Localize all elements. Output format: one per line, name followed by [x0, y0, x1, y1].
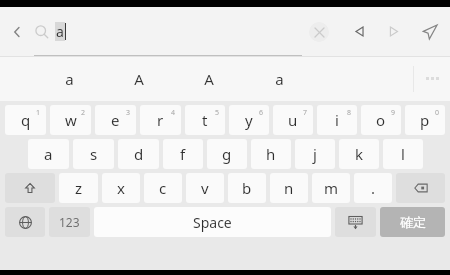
button[interactable]: Back	[0, 7, 34, 56]
staticText: 5	[215, 108, 220, 118]
button[interactable]: m	[312, 173, 350, 203]
staticText: a	[65, 69, 74, 89]
button[interactable]: Send	[410, 7, 450, 56]
button[interactable]: y	[229, 105, 269, 135]
button[interactable]: d	[118, 139, 159, 169]
button[interactable]: Change language	[5, 207, 45, 237]
staticText: 123	[59, 214, 80, 230]
staticText: 6	[259, 108, 264, 118]
staticText: a	[44, 144, 53, 164]
staticText: 確定	[400, 214, 426, 230]
staticText: s	[90, 144, 98, 164]
button[interactable]: More options	[414, 56, 450, 101]
staticText: q	[21, 110, 31, 130]
staticText: d	[134, 144, 144, 164]
staticText: f	[180, 144, 186, 164]
button[interactable]: e	[95, 105, 136, 135]
button[interactable]: u	[273, 105, 313, 135]
staticText: Space	[193, 213, 232, 232]
button[interactable]: v	[186, 173, 224, 203]
button[interactable]: w	[50, 105, 91, 135]
button[interactable]: g	[207, 139, 247, 169]
button[interactable]: 確定	[380, 207, 445, 237]
staticText: j	[313, 144, 317, 164]
button[interactable]: 123	[49, 207, 90, 237]
staticText: 1	[36, 108, 41, 118]
staticText: A	[204, 69, 214, 89]
staticText: a	[56, 22, 64, 41]
button[interactable]: .	[354, 173, 392, 203]
button[interactable]: z	[59, 173, 98, 203]
button[interactable]: a	[34, 7, 302, 56]
staticText: t	[202, 110, 208, 130]
button[interactable]: Clear	[302, 7, 336, 56]
staticText: i	[335, 110, 339, 130]
button[interactable]: t	[185, 105, 225, 135]
staticText: a	[275, 69, 284, 89]
staticText: 0	[435, 108, 440, 118]
button[interactable]: f	[163, 139, 203, 169]
button[interactable]: A	[104, 56, 174, 101]
button[interactable]: q	[5, 105, 46, 135]
button[interactable]: c	[144, 173, 182, 203]
button[interactable]: l	[383, 139, 423, 169]
button[interactable]: Previous	[342, 7, 376, 56]
staticText: k	[355, 144, 364, 164]
staticText: 3	[126, 108, 131, 118]
staticText: x	[117, 178, 125, 198]
staticText: l	[401, 144, 405, 164]
button[interactable]: o	[361, 105, 401, 135]
button[interactable]: a	[244, 56, 314, 101]
staticText: u	[288, 110, 298, 130]
staticText: o	[376, 110, 386, 130]
button[interactable]: Shift	[5, 173, 55, 203]
button[interactable]: i	[317, 105, 357, 135]
staticText: 9	[391, 108, 396, 118]
staticText: 4	[171, 108, 176, 118]
staticText: .	[371, 178, 376, 198]
button[interactable]: a	[28, 139, 69, 169]
staticText: y	[245, 110, 253, 130]
button[interactable]: j	[295, 139, 335, 169]
staticText: A	[134, 69, 144, 89]
button[interactable]: x	[102, 173, 140, 203]
button[interactable]: r	[140, 105, 181, 135]
staticText: 8	[347, 108, 352, 118]
staticText: m	[324, 178, 339, 198]
staticText: b	[242, 178, 252, 198]
staticText: z	[75, 178, 83, 198]
button[interactable]: a	[34, 56, 104, 101]
button[interactable]: b	[228, 173, 266, 203]
staticText: r	[157, 110, 164, 130]
staticText: c	[159, 178, 167, 198]
button[interactable]: p	[405, 105, 445, 135]
staticText: p	[420, 110, 430, 130]
staticText: e	[111, 110, 120, 130]
button[interactable]: k	[339, 139, 379, 169]
button[interactable]: Next	[376, 7, 410, 56]
button[interactable]: n	[270, 173, 308, 203]
staticText: g	[222, 144, 232, 164]
button[interactable]: Hide keyboard	[335, 207, 376, 237]
staticText: h	[266, 144, 276, 164]
button[interactable]: h	[251, 139, 291, 169]
button[interactable]: s	[73, 139, 114, 169]
button[interactable]: A	[174, 56, 244, 101]
staticText: n	[284, 178, 294, 198]
button[interactable]: Space	[94, 207, 331, 237]
staticText: 7	[303, 108, 308, 118]
staticText: w	[65, 110, 77, 130]
button[interactable]: Backspace	[396, 173, 445, 203]
staticText: v	[201, 178, 209, 198]
staticText: 2	[81, 108, 86, 118]
